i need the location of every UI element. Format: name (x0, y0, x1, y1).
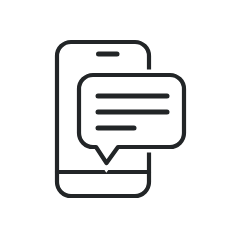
button[interactable]: Phone message icon (0, 0, 240, 240)
